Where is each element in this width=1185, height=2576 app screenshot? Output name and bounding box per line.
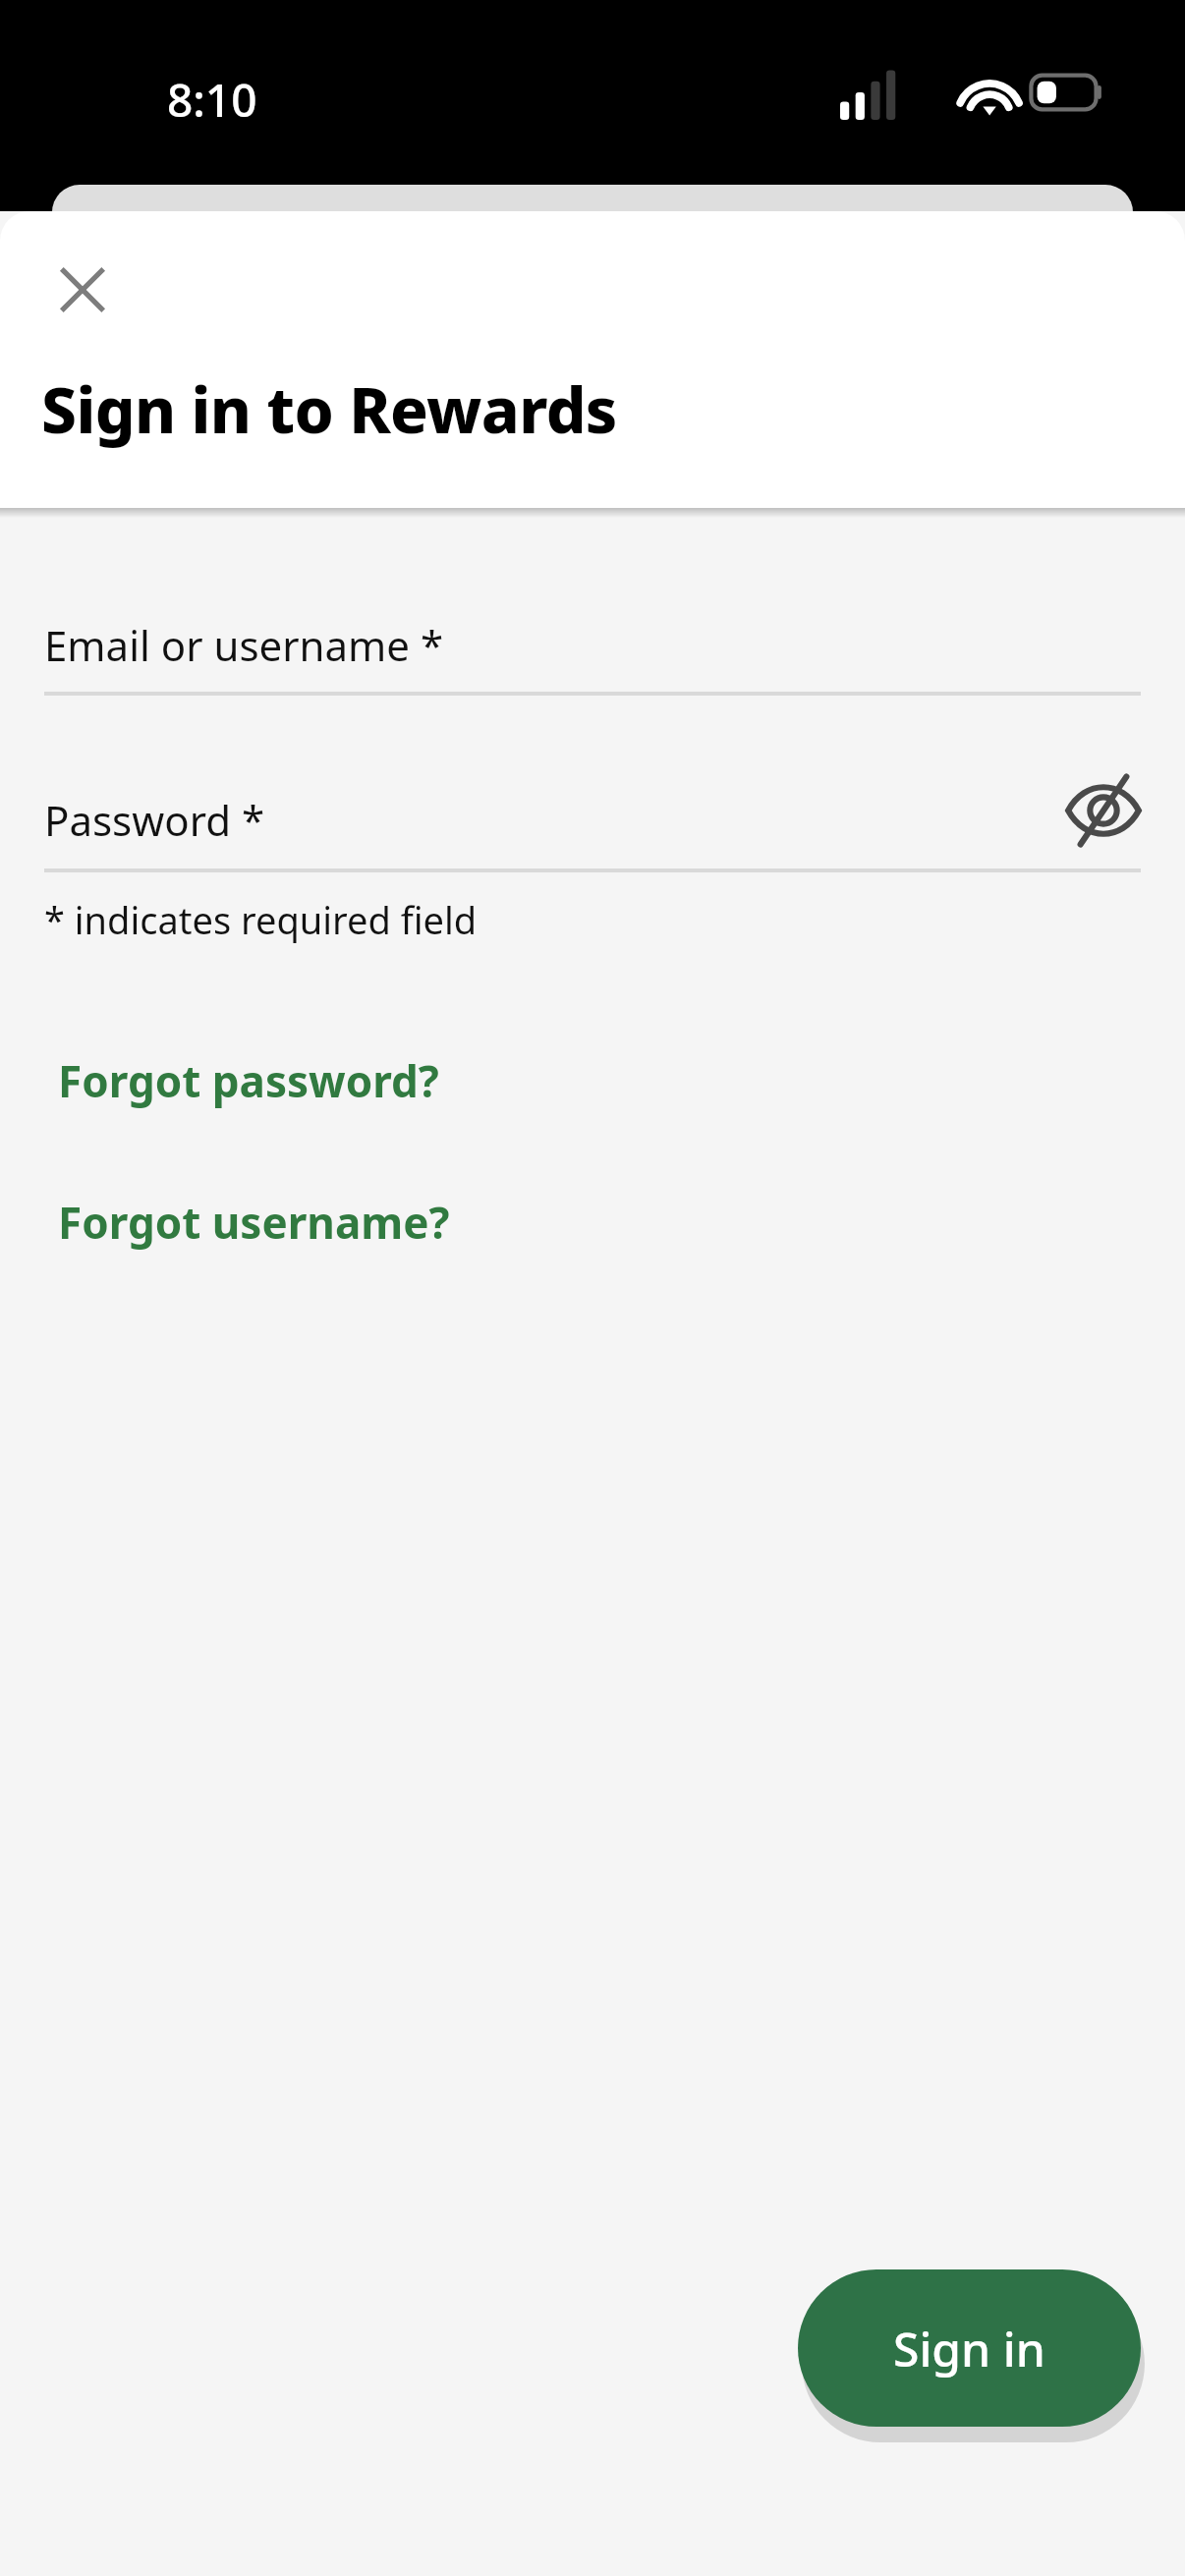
staticText: Forgot username? [58,1193,450,1252]
button[interactable]: Sign in [798,2269,1141,2427]
button[interactable]: Forgot username? [44,1176,464,1268]
staticText: Sign in to Rewards [41,366,617,452]
staticText: Sign in [893,2317,1045,2380]
button[interactable]: Close [33,241,132,339]
staticText: * indicates required field [44,894,478,945]
staticText: Password * [44,792,265,848]
staticText: Forgot password? [58,1051,439,1110]
button[interactable]: Forgot password? [44,1035,453,1127]
staticText: 8:10 [167,69,257,131]
button[interactable]: Show password [1032,747,1175,874]
staticText: Email or username * [44,617,444,673]
